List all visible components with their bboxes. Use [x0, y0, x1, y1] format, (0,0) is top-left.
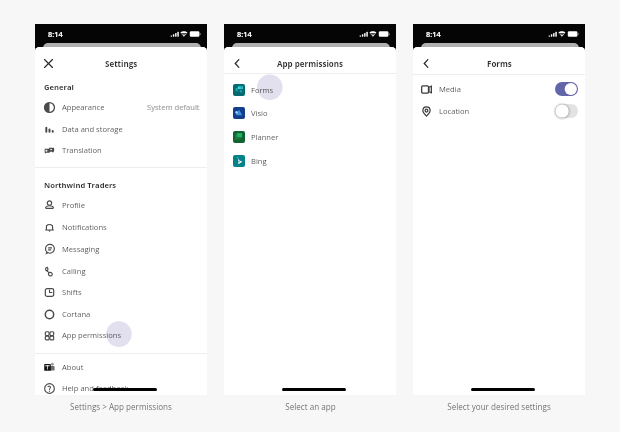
- button[interactable]: Bing: [224, 150, 396, 172]
- button[interactable]: App permissions: [35, 324, 207, 346]
- staticText: Northwind Traders: [44, 180, 117, 190]
- button[interactable]: Calling: [35, 260, 207, 282]
- staticText: Shifts: [62, 287, 82, 297]
- button[interactable]: Translation: [35, 139, 207, 161]
- button[interactable]: Close: [41, 56, 56, 71]
- button[interactable]: Planner: [224, 126, 396, 148]
- staticText: Select an app: [285, 401, 336, 412]
- button[interactable]: Forms: [224, 79, 396, 101]
- staticText: 8:14: [48, 29, 63, 39]
- staticText: Visio: [251, 108, 268, 118]
- staticText: Help and feedback: [62, 383, 129, 393]
- staticText: Settings > App permissions: [70, 401, 172, 412]
- staticText: Profile: [62, 200, 85, 210]
- button[interactable]: Notifications: [35, 216, 207, 238]
- staticText: Cortana: [62, 309, 91, 319]
- staticText: Media: [439, 84, 461, 94]
- staticText: 8:14: [237, 29, 252, 39]
- staticText: About: [62, 362, 84, 372]
- button[interactable]: Media: [413, 78, 585, 100]
- button[interactable]: Location: [413, 100, 585, 122]
- staticText: Appearance: [62, 102, 105, 112]
- button[interactable]: Shifts: [35, 281, 207, 303]
- staticText: 8:14: [426, 29, 441, 39]
- button[interactable]: Help and feedback: [35, 377, 207, 395]
- button[interactable]: Back: [230, 56, 245, 71]
- button[interactable]: Visio: [224, 102, 396, 124]
- staticText: Select your desired settings: [447, 401, 551, 412]
- staticText: Notifications: [62, 222, 107, 232]
- staticText: App permissions: [62, 330, 122, 340]
- staticText: Data and storage: [62, 124, 123, 134]
- staticText: Forms: [251, 85, 274, 95]
- staticText: Calling: [62, 266, 86, 276]
- button[interactable]: Cortana: [35, 303, 207, 325]
- button[interactable]: Appearance: [35, 96, 207, 118]
- button[interactable]: About: [35, 356, 207, 378]
- staticText: Translation: [62, 145, 102, 155]
- button[interactable]: Messaging: [35, 238, 207, 260]
- button[interactable]: Data and storage: [35, 118, 207, 140]
- staticText: Location: [439, 106, 470, 116]
- staticText: General: [44, 82, 74, 92]
- staticText: Planner: [251, 132, 279, 142]
- staticText: System default: [147, 102, 200, 112]
- staticText: Forms: [487, 58, 512, 69]
- staticText: Messaging: [62, 244, 100, 254]
- staticText: Bing: [251, 156, 267, 166]
- button[interactable]: Back: [419, 56, 434, 71]
- staticText: Settings: [105, 58, 138, 69]
- button[interactable]: Profile: [35, 194, 207, 216]
- staticText: App permissions: [277, 58, 344, 69]
